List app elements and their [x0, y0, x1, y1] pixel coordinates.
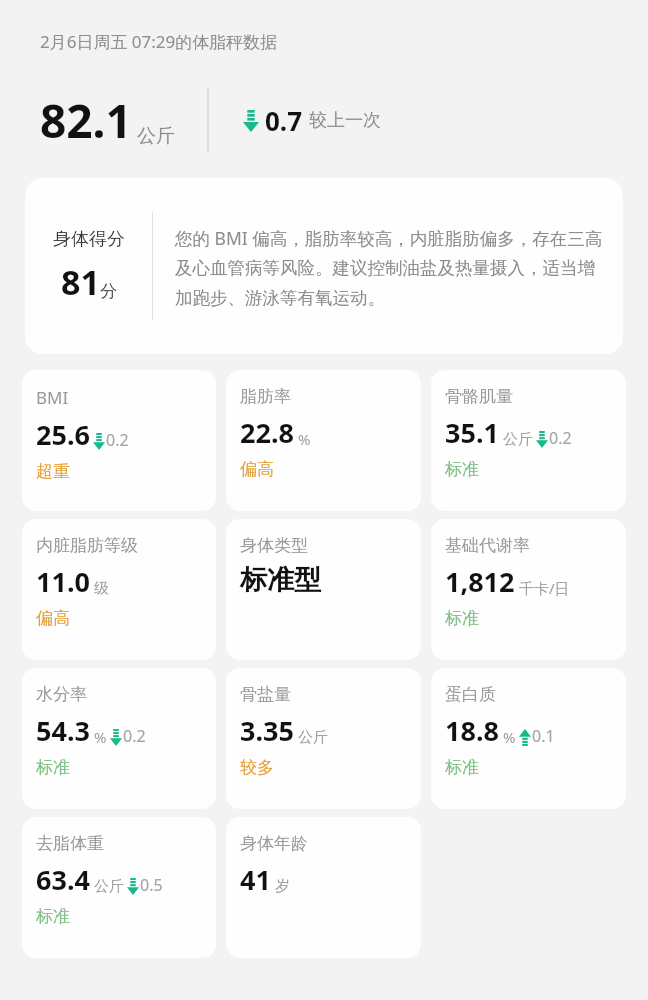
staticText: 千卡/日 [519, 578, 570, 598]
staticText: BMI [36, 386, 69, 409]
button[interactable]: 身体得分 [25, 178, 623, 354]
button[interactable]: 身体类型 [226, 519, 421, 660]
button[interactable]: 骨骼肌量 [431, 370, 626, 511]
staticText: 18.8 [445, 712, 499, 749]
staticText: 较多 [240, 757, 274, 778]
button[interactable]: 水分率 [22, 668, 216, 809]
staticText: 分 [100, 281, 117, 302]
staticText: 0.2 [549, 427, 572, 449]
staticText: 骨骼肌量 [445, 386, 513, 407]
staticText: 0.1 [532, 725, 555, 747]
staticText: 0.5 [140, 874, 163, 896]
staticText: % [94, 727, 107, 747]
staticText: 63.4 [36, 861, 90, 898]
staticText: 身体类型 [240, 535, 308, 556]
button[interactable]: 基础代谢率 [431, 519, 626, 660]
staticText: 偏高 [36, 608, 70, 629]
staticText: 标准 [445, 757, 479, 778]
button[interactable]: 身体年龄 [226, 817, 421, 958]
staticText: 您的 BMI 偏高，脂肪率较高，内脏脂肪偏多，存在三高及心血管病等风险。建议控制… [175, 221, 605, 312]
staticText: 标准 [445, 608, 479, 629]
staticText: 偏高 [240, 459, 274, 480]
staticText: 基础代谢率 [445, 535, 530, 556]
staticText: 超重 [36, 461, 70, 482]
staticText: 22.8 [240, 414, 294, 451]
staticText: 54.3 [36, 712, 90, 749]
staticText: 0.7 [265, 103, 303, 138]
staticText: 41 [240, 861, 271, 898]
button[interactable]: 骨盐量 [226, 668, 421, 809]
button[interactable]: 内脏脂肪等级 [22, 519, 216, 660]
staticText: 公斤 [503, 430, 533, 449]
staticText: 身体得分 [53, 228, 125, 251]
staticText: 内脏脂肪等级 [36, 535, 138, 556]
staticText: 水分率 [36, 684, 87, 705]
staticText: % [503, 727, 516, 747]
staticText: 2月6日周五 07:29的体脂秤数据 [40, 30, 278, 53]
staticText: 标准 [445, 459, 479, 480]
staticText: 公斤 [137, 124, 175, 148]
staticText: 0.2 [123, 725, 146, 747]
staticText: 81 [61, 259, 100, 305]
staticText: 25.6 [36, 416, 90, 453]
staticText: 级 [94, 579, 109, 598]
staticText: 1,812 [445, 563, 515, 600]
staticText: 脂肪率 [240, 386, 291, 407]
staticText: 0.2 [106, 429, 129, 451]
staticText: 公斤 [94, 877, 124, 896]
staticText: 3.35 [240, 712, 294, 749]
staticText: 公斤 [298, 728, 328, 747]
button[interactable]: 蛋白质 [431, 668, 626, 809]
button[interactable]: 脂肪率 [226, 370, 421, 511]
staticText: 11.0 [36, 563, 90, 600]
button[interactable]: BMI [22, 370, 216, 511]
staticText: 身体年龄 [240, 833, 308, 854]
staticText: 标准 [36, 906, 70, 927]
staticText: 骨盐量 [240, 684, 291, 705]
staticText: 蛋白质 [445, 684, 496, 705]
staticText: 岁 [275, 877, 290, 896]
button[interactable]: 去脂体重 [22, 817, 216, 958]
staticText: 较上一次 [309, 109, 381, 132]
staticText: 35.1 [445, 414, 499, 451]
staticText: 82.1 [40, 89, 132, 152]
staticText: 标准型 [240, 563, 321, 597]
staticText: 去脂体重 [36, 833, 104, 854]
staticText: % [298, 429, 311, 449]
staticText: 标准 [36, 757, 70, 778]
